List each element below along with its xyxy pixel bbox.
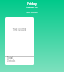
- button[interactable]: THE GUIDE: [5, 17, 34, 65]
- staticText: see details: [0, 11, 64, 14]
- staticText: Details: [7, 59, 16, 63]
- staticText: March 12: [0, 5, 64, 8]
- staticText: THE GUIDE: [5, 28, 34, 32]
- staticText: Friday: [0, 2, 64, 6]
- staticText: Total: [7, 56, 13, 60]
